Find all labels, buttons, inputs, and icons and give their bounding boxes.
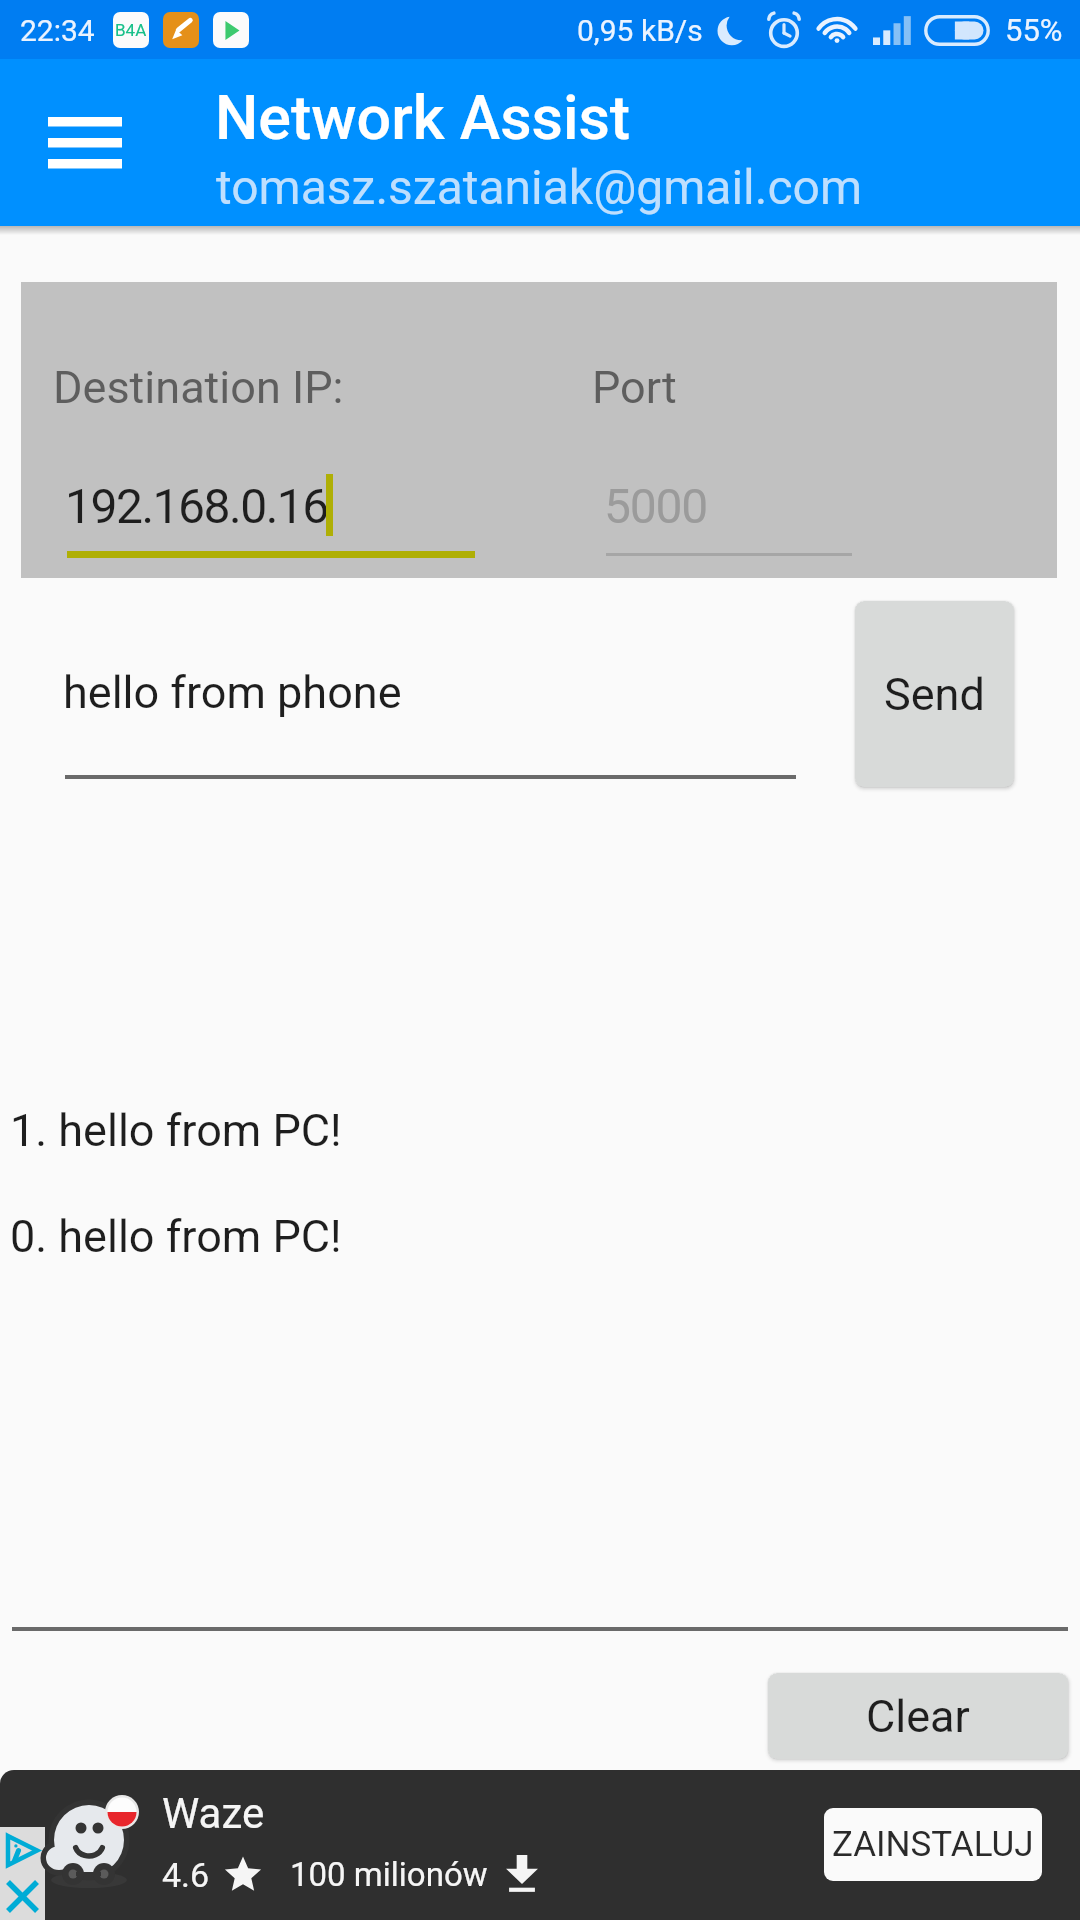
staticText: 5000	[604, 478, 708, 534]
staticText: 100 milionów	[290, 1855, 488, 1894]
button[interactable]: Send	[855, 601, 1014, 787]
button[interactable]: Clear	[768, 1673, 1068, 1759]
staticText: 55%	[1005, 12, 1063, 48]
staticText: tomasz.szataniak@gmail.com	[216, 159, 863, 215]
staticText: 4.6	[162, 1855, 210, 1895]
staticText: 0,95 kB/s	[577, 13, 703, 48]
button[interactable]: Close ad	[0, 1873, 45, 1920]
button[interactable]: ZAINSTALUJ	[824, 1808, 1042, 1881]
button[interactable]: hello from phone	[65, 640, 796, 779]
staticText: 22:34	[20, 13, 95, 48]
staticText: Port	[592, 361, 677, 414]
staticText: 0. hello from PC!	[10, 1210, 342, 1263]
button[interactable]: 5000	[606, 452, 852, 556]
staticText: Clear	[866, 1690, 970, 1743]
staticText: B4A	[115, 20, 147, 40]
button[interactable]: Open navigation drawer	[20, 94, 150, 190]
staticText: Send	[884, 668, 985, 721]
staticText: Destination IP:	[53, 361, 344, 414]
button[interactable]: 192.168.0.16	[67, 452, 475, 558]
staticText: hello from phone	[63, 666, 402, 719]
staticText: 192.168.0.16	[65, 478, 328, 534]
staticText: Network Assist	[215, 82, 631, 153]
staticText: ZAINSTALUJ	[832, 1824, 1034, 1865]
button[interactable]: Ad choices	[0, 1827, 45, 1873]
staticText: Waze	[162, 1789, 265, 1838]
staticText: 1. hello from PC!	[10, 1104, 342, 1157]
